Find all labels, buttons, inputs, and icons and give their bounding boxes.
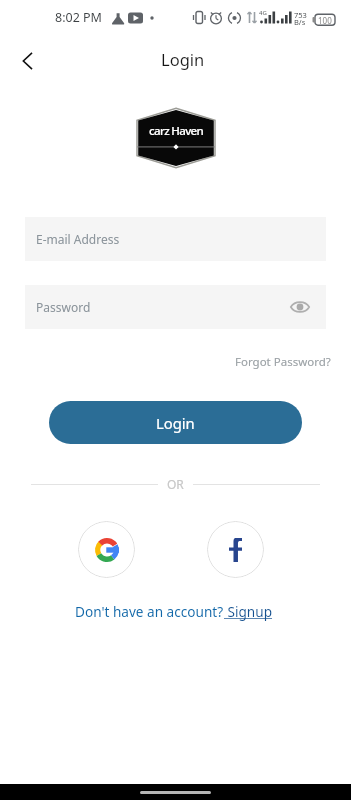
staticText: Password [36,299,91,315]
staticText: OR [167,476,184,492]
button[interactable]: Password [25,285,326,329]
button[interactable]: Show password [287,294,313,320]
staticText: carz Haven [149,123,204,139]
button[interactable]: Back [13,46,43,76]
button[interactable]: Signup [224,602,276,621]
staticText: 100 [318,15,332,26]
staticText: Don't have an account? [75,602,224,621]
button[interactable]: Forgot Password? [235,354,331,370]
staticText: Login [161,48,205,70]
staticText: 8:02 PM [55,9,102,26]
button[interactable]: Sign in with Google [78,521,135,578]
staticText: 4G [259,9,267,17]
staticText: B/s [294,17,306,27]
button[interactable]: Login [49,401,302,444]
staticText: E-mail Address [36,231,120,247]
button[interactable]: E-mail Address [25,217,326,261]
button[interactable]: Sign in with Facebook [207,521,264,578]
staticText: 753 [294,10,307,20]
staticText: Login [156,413,195,433]
